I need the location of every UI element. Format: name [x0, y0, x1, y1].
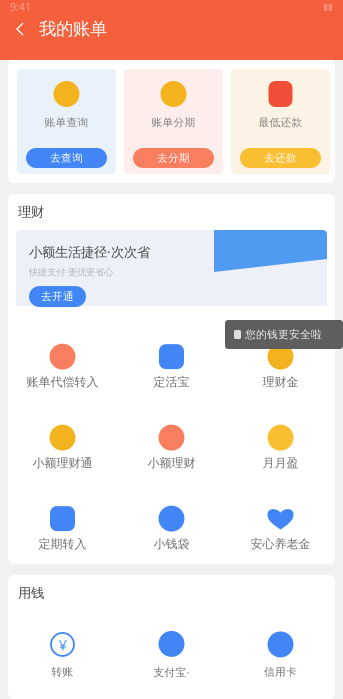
staticText: 您的钱更安全啦 [245, 328, 322, 341]
staticText: 我的账单 [39, 18, 107, 40]
staticText: 去查询 [50, 151, 83, 164]
staticText: 去分期 [157, 151, 190, 164]
staticText: 小额理财通 [32, 456, 92, 470]
staticText: 用钱 [18, 585, 44, 601]
staticText: 信用卡 [264, 665, 297, 678]
staticText: 9:41 [10, 0, 31, 14]
staticText: 定期转入 [38, 537, 86, 551]
staticText: 安心养老金 [250, 537, 310, 551]
button[interactable]: ¥ [8, 611, 117, 689]
button[interactable]: 安心养老金 [226, 481, 335, 562]
button[interactable]: 小额理财 [117, 400, 226, 481]
button[interactable]: 定期转入 [8, 481, 117, 562]
button[interactable]: Back [8, 12, 34, 46]
staticText: ¥ [58, 635, 66, 654]
button[interactable]: 账单代偿转入 [8, 319, 117, 400]
button[interactable]: 小额生活捷径·次次省 [16, 230, 327, 311]
button[interactable]: 信用卡 [226, 611, 335, 689]
staticText: 账单查询 [44, 116, 88, 129]
button[interactable]: 理财金 [226, 319, 335, 400]
staticText: 定活宝 [153, 375, 189, 389]
staticText: 理财 [18, 204, 44, 220]
staticText: 最低还款 [258, 116, 302, 129]
button[interactable]: 定活宝 [117, 319, 226, 400]
staticText: 去还款 [264, 151, 297, 164]
staticText: 账单代偿转入 [26, 375, 98, 389]
staticText: 支付宝· [153, 665, 189, 679]
staticText: 快捷支付·更优更省心 [29, 266, 113, 278]
staticText: 账单分期 [151, 116, 195, 129]
button[interactable]: 最低还款 [231, 69, 330, 174]
button[interactable]: 支付宝· [117, 611, 226, 689]
button[interactable]: 账单查询 [17, 69, 116, 174]
button[interactable]: 月月盈 [226, 400, 335, 481]
staticText: ▮▮ [323, 1, 333, 12]
staticText: 小额生活捷径·次次省 [29, 243, 150, 261]
staticText: 转账 [51, 665, 73, 678]
staticText: 理财金 [262, 375, 298, 389]
button[interactable]: 小额理财通 [8, 400, 117, 481]
staticText: 小额理财 [147, 456, 195, 470]
staticText: 去开通 [41, 290, 74, 303]
button[interactable]: 账单分期 [124, 69, 223, 174]
staticText: 月月盈 [262, 456, 298, 470]
button[interactable]: 小钱袋 [117, 481, 226, 562]
staticText: 小钱袋 [153, 537, 189, 551]
